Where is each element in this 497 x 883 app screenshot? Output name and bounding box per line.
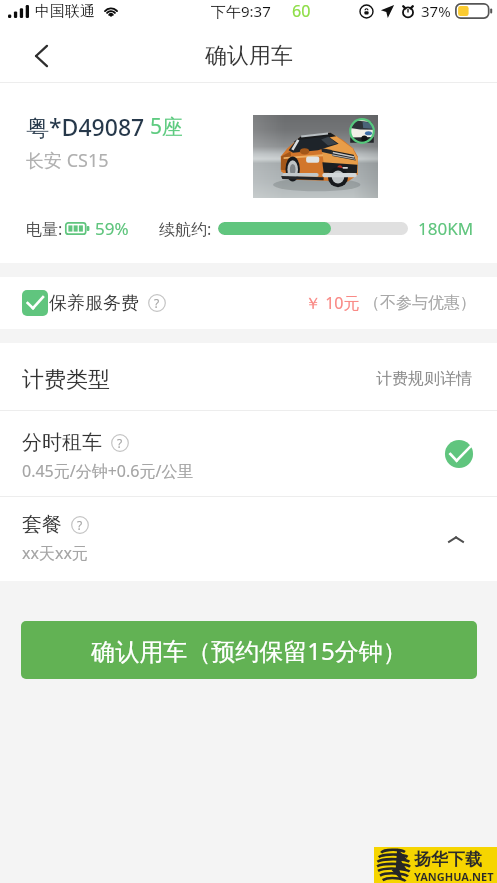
staticText: 计费类型 [22, 366, 110, 394]
staticText: 分时租车 [22, 430, 102, 455]
staticText: 37% [421, 1, 451, 21]
staticText: 扬华下载 [414, 849, 482, 870]
button[interactable]: 返回 [0, 30, 66, 82]
staticText: 180KM [418, 217, 474, 240]
staticText: 确认用车 [205, 42, 293, 70]
staticText: （不参与优惠） [364, 293, 476, 313]
button[interactable]: 保养服务费 [0, 277, 497, 329]
staticText: 电量: [26, 218, 63, 240]
button[interactable]: 确认用车（预约保留15分钟） [21, 621, 477, 679]
staticText: YANGHUA.NET [414, 869, 494, 883]
staticText: 续航约: [159, 218, 212, 240]
staticText: 60 [292, 0, 311, 22]
staticText: xx天xx元 [22, 542, 88, 564]
staticText: ? [154, 295, 160, 311]
staticText: 0.45元/分钟+0.6元/公里 [22, 460, 194, 482]
button[interactable]: 收起 [441, 524, 471, 554]
staticText: 计费规则详情 [376, 369, 472, 389]
staticText: ? [117, 435, 123, 451]
staticText: ￥ 10元 [305, 292, 360, 314]
staticText: 中国联通 [35, 2, 95, 21]
staticText: 下午9:37 [211, 1, 271, 21]
button[interactable]: 套餐 [0, 497, 497, 581]
button[interactable]: 计费规则详情 [376, 367, 472, 387]
staticText: 5座 [150, 112, 184, 141]
staticText: 长安 CS15 [26, 148, 109, 173]
staticText: 保养服务费 [49, 292, 139, 315]
staticText: 确认用车（预约保留15分钟） [91, 634, 407, 667]
staticText: 套餐 [22, 512, 62, 537]
staticText: ? [77, 517, 83, 533]
staticText: 粤*D49087 [26, 111, 145, 142]
staticText: 59% [95, 217, 129, 240]
button[interactable]: 分时租车 [0, 411, 497, 496]
